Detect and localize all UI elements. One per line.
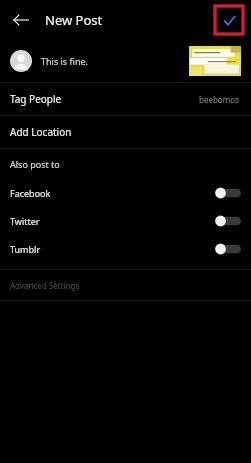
staticText: Tag People (10, 92, 62, 106)
staticText: Advanced Settings (10, 280, 80, 291)
button[interactable]: Advanced Settings (0, 270, 251, 300)
button[interactable]: Tag People (0, 83, 251, 115)
staticText: beebomco (199, 94, 239, 105)
staticText: Twitter (10, 215, 40, 227)
button[interactable]: This is fine. (0, 40, 251, 82)
button[interactable]: Add Location (0, 116, 251, 148)
button[interactable]: Toggle off (215, 243, 241, 255)
staticText: Tumblr (10, 243, 41, 255)
button[interactable]: Facebook (0, 179, 251, 207)
button[interactable]: Toggle off (215, 215, 241, 227)
button[interactable]: Selected photo (189, 46, 241, 76)
staticText: Add Location (10, 125, 72, 139)
staticText: This is fine. (41, 55, 88, 67)
staticText: Also post to (10, 158, 60, 170)
button[interactable]: Share post (215, 6, 243, 34)
button[interactable]: Twitter (0, 207, 251, 235)
button[interactable]: Tumblr (0, 235, 251, 263)
staticText: New Post (45, 11, 103, 29)
button[interactable]: Back (8, 7, 34, 33)
button[interactable]: Toggle off (215, 187, 241, 199)
staticText: Facebook (10, 187, 51, 199)
